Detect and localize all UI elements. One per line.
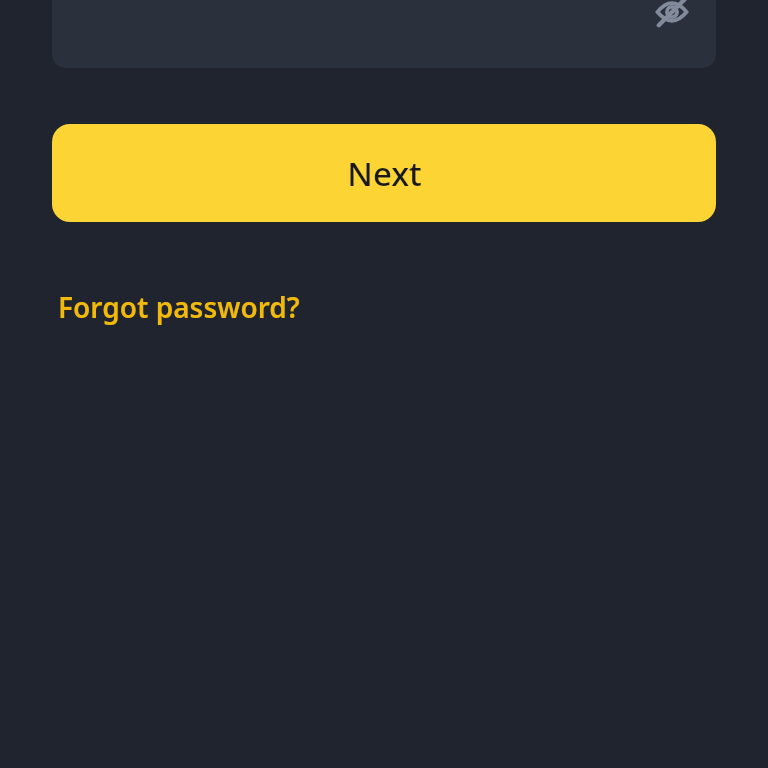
staticText: Next [347,151,422,196]
button[interactable] [52,0,716,68]
button[interactable]: Hide password [650,0,694,34]
button[interactable]: Forgot password? [58,288,300,326]
staticText: Forgot password? [58,288,300,326]
button[interactable]: Next [52,124,716,222]
